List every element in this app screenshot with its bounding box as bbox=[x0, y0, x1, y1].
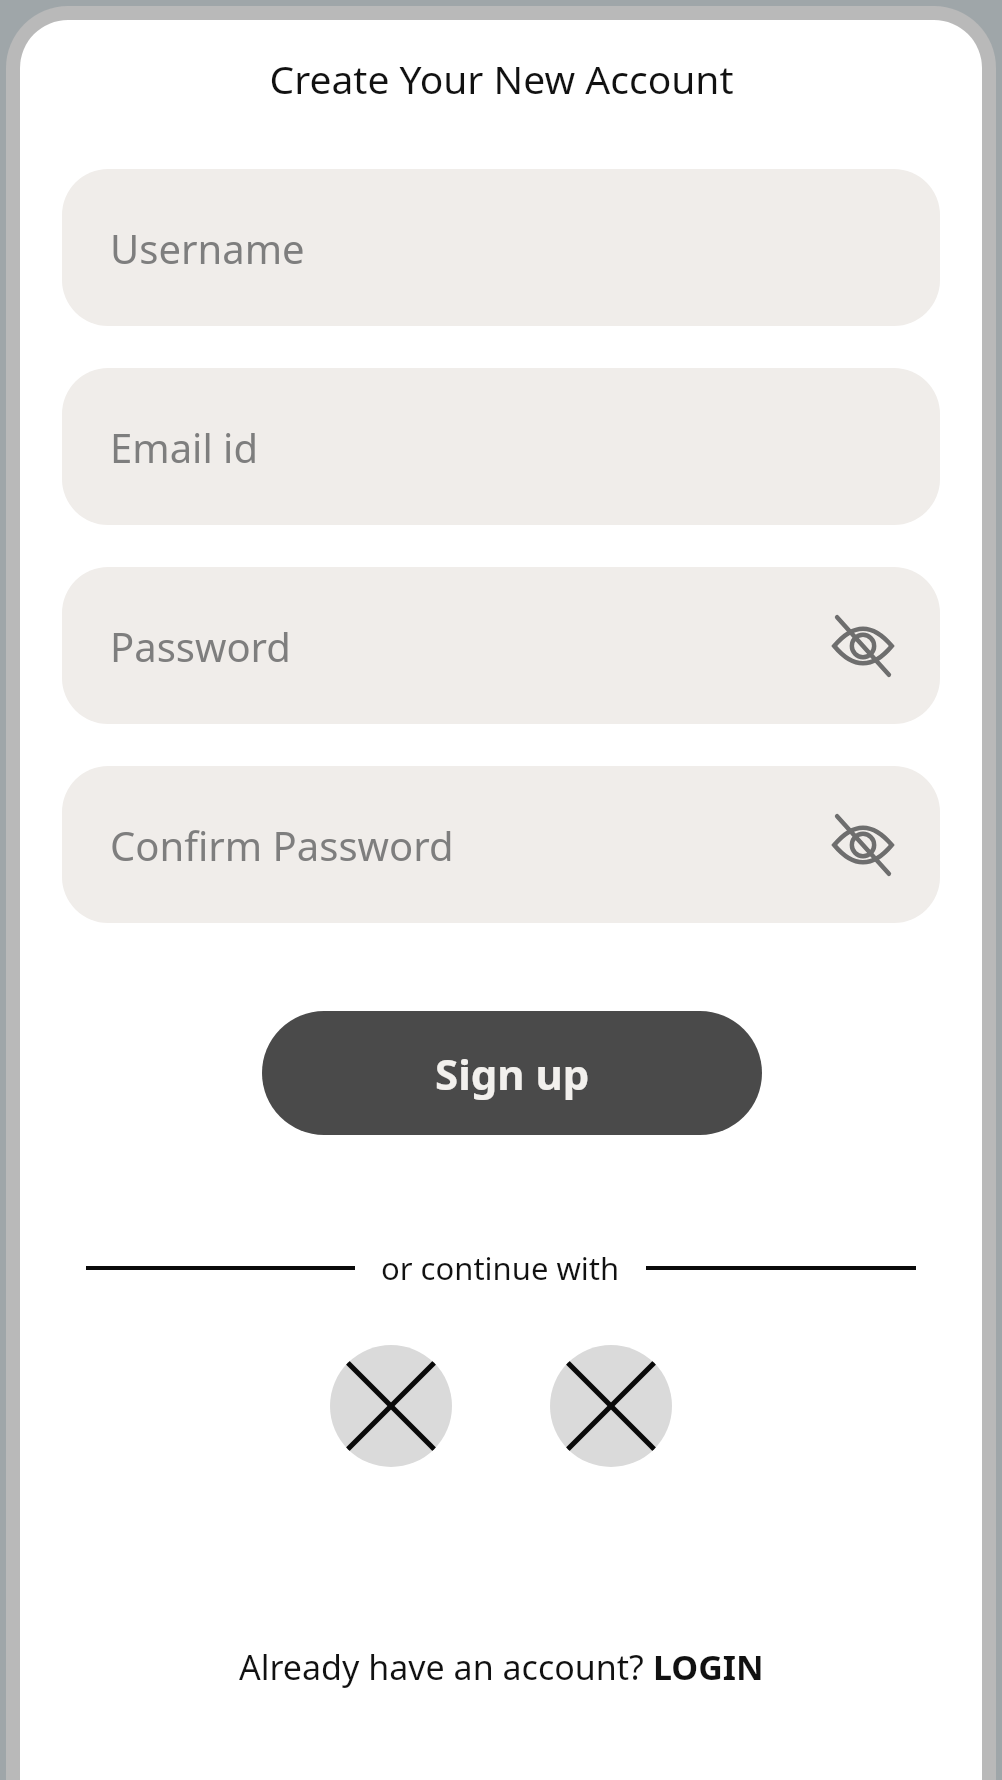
staticText: Email id bbox=[110, 420, 259, 474]
staticText: Sign up bbox=[435, 1045, 590, 1102]
button[interactable]: Toggle password visibility bbox=[820, 802, 906, 888]
button[interactable]: Toggle password visibility bbox=[820, 603, 906, 689]
button[interactable]: Email id bbox=[62, 368, 940, 525]
staticText: Password bbox=[110, 619, 291, 673]
button[interactable]: Password bbox=[62, 567, 940, 724]
button[interactable]: Continue with Google bbox=[330, 1345, 452, 1467]
staticText: Already have an account? bbox=[239, 1644, 653, 1690]
staticText: Create Your New Account bbox=[269, 52, 734, 105]
button[interactable]: Confirm Password bbox=[62, 766, 940, 923]
staticText: Confirm Password bbox=[110, 818, 454, 872]
button[interactable]: Continue with Facebook bbox=[550, 1345, 672, 1467]
staticText: LOGIN bbox=[653, 1644, 764, 1690]
staticText: Username bbox=[110, 221, 305, 275]
button[interactable]: Sign up bbox=[262, 1011, 762, 1135]
staticText: or continue with bbox=[381, 1247, 620, 1289]
button[interactable]: Username bbox=[62, 169, 940, 326]
button[interactable]: Already have an account? bbox=[20, 1632, 982, 1702]
